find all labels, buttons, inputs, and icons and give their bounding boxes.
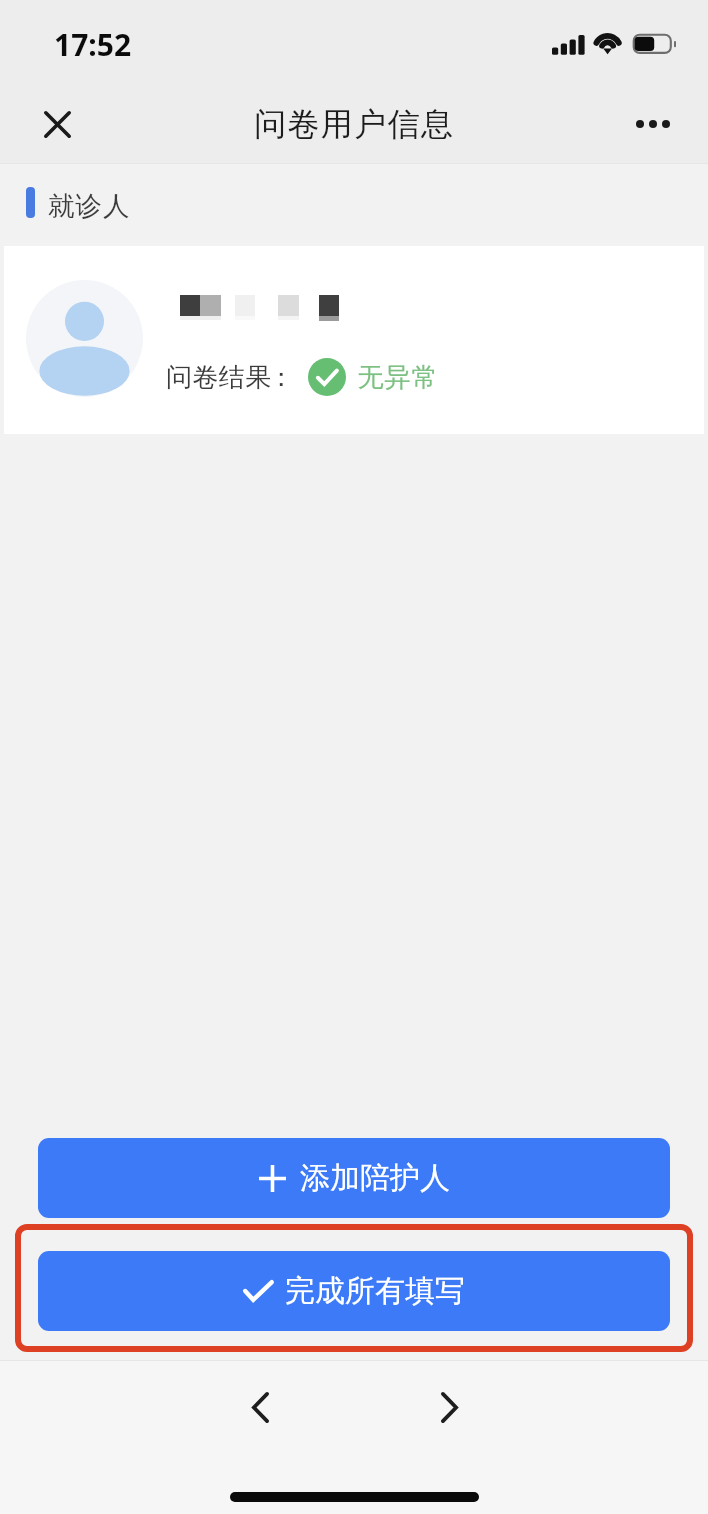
button[interactable]: Close	[22, 89, 92, 159]
button[interactable]: Next page	[411, 1369, 487, 1445]
staticText: 完成所有填写	[285, 1272, 465, 1310]
staticText: 无异常	[357, 361, 438, 394]
button[interactable]: 添加陪护人	[38, 1138, 670, 1218]
staticText: 17:52	[54, 24, 132, 65]
button[interactable]: 完成所有填写	[38, 1251, 670, 1331]
button[interactable]: More options	[618, 89, 688, 159]
button[interactable]: Previous page	[222, 1369, 298, 1445]
staticText: 添加陪护人	[300, 1159, 450, 1197]
staticText: 问卷用户信息	[254, 104, 455, 144]
button[interactable]: 问卷结果	[4, 246, 704, 434]
staticText: 问卷结果	[166, 361, 272, 394]
staticText: 就诊人	[48, 189, 131, 222]
staticText: ：	[268, 361, 294, 394]
